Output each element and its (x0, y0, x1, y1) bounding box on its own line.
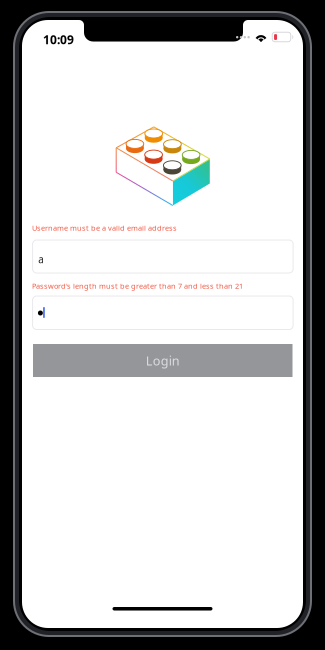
staticText: Login (146, 352, 180, 369)
button[interactable]: Login (33, 344, 292, 377)
staticText: Password's length must be greater than 7… (32, 281, 243, 291)
staticText: a (38, 252, 44, 266)
staticText: 10:09 (43, 31, 74, 48)
staticText: Username must be a valid email address (32, 223, 177, 233)
